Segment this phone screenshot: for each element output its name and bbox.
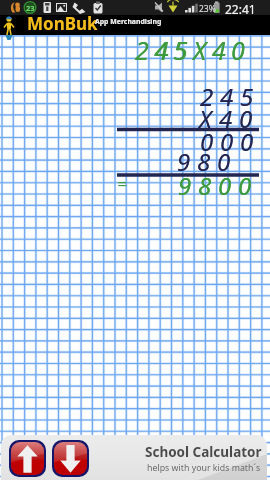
staticText: 0 bbox=[217, 145, 231, 178]
staticText: X bbox=[193, 33, 207, 67]
staticText: School Calculator bbox=[145, 443, 262, 461]
button[interactable]: Scroll up bbox=[11, 442, 44, 475]
staticText: 4 bbox=[220, 80, 234, 113]
staticText: X bbox=[193, 33, 207, 67]
staticText: 0 bbox=[218, 169, 232, 202]
staticText: 9 bbox=[178, 169, 192, 202]
staticText: 0 bbox=[238, 169, 252, 202]
staticText: 5 bbox=[240, 80, 254, 113]
staticText: helps with your kids math´s bbox=[147, 462, 261, 474]
staticText: 2 bbox=[135, 33, 149, 67]
staticText: 4 bbox=[212, 33, 226, 67]
staticText: App Merchandising bbox=[95, 17, 162, 26]
staticText: 5 bbox=[173, 33, 187, 67]
staticText: 2 bbox=[135, 33, 149, 67]
staticText: 0 bbox=[220, 125, 234, 158]
staticText: 4 bbox=[155, 33, 169, 67]
staticText: 8 bbox=[198, 169, 212, 202]
staticText: 0 bbox=[239, 102, 253, 135]
staticText: 9 bbox=[177, 145, 191, 178]
staticText: 2 bbox=[200, 80, 214, 113]
staticText: 5 bbox=[174, 33, 188, 67]
staticText: 23 bbox=[26, 3, 35, 13]
staticText: 8 bbox=[197, 145, 211, 178]
staticText: 2 bbox=[200, 80, 214, 113]
button[interactable]: Scroll down bbox=[54, 442, 87, 475]
staticText: 4 bbox=[219, 102, 233, 135]
staticText: 0 bbox=[240, 125, 254, 158]
staticText: X bbox=[199, 102, 212, 135]
staticText: 0 bbox=[231, 33, 245, 67]
staticText: 0 bbox=[238, 169, 252, 202]
staticText: 0 bbox=[218, 169, 232, 202]
staticText: 8 bbox=[197, 145, 211, 178]
staticText: 9 bbox=[178, 169, 192, 202]
staticText: 23% bbox=[199, 3, 216, 15]
staticText: 0 bbox=[200, 125, 214, 158]
staticText: X bbox=[199, 102, 212, 135]
staticText: 5 bbox=[240, 80, 254, 113]
staticText: 4 bbox=[219, 102, 233, 135]
staticText: 0 bbox=[240, 125, 254, 158]
staticText: 4 bbox=[212, 33, 226, 67]
staticText: 0 bbox=[200, 125, 214, 158]
staticText: = bbox=[117, 172, 127, 195]
staticText: 4 bbox=[220, 80, 234, 113]
staticText: 0 bbox=[231, 33, 245, 67]
staticText: 4 bbox=[154, 33, 168, 67]
staticText: 9 bbox=[177, 145, 191, 178]
staticText: 0 bbox=[239, 102, 253, 135]
staticText: 0 bbox=[220, 125, 234, 158]
staticText: 8 bbox=[198, 169, 212, 202]
staticText: 0 bbox=[217, 145, 231, 178]
staticText: 22:41 bbox=[225, 1, 256, 16]
staticText: MonBuk bbox=[27, 12, 98, 32]
